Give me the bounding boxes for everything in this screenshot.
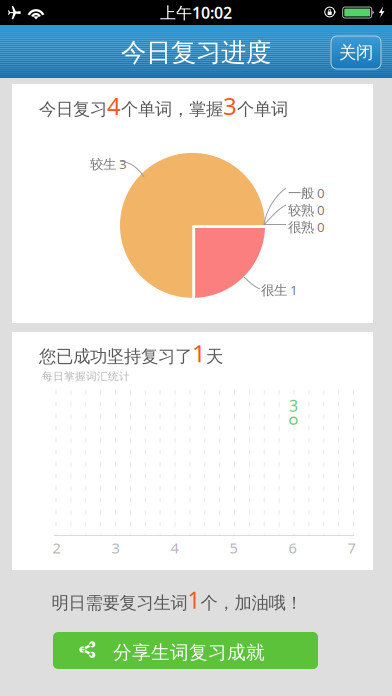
staticText: 4 (107, 90, 121, 122)
button[interactable]: 分享生词复习成就 (53, 632, 318, 669)
staticText: 上午10:02 (160, 2, 232, 23)
staticText: 今日复习 (39, 98, 107, 120)
staticText: 1 (192, 337, 206, 369)
staticText: 4 (171, 538, 179, 557)
staticText: 6 (289, 538, 297, 557)
staticText: 天 (206, 346, 223, 367)
staticText: 3 (289, 395, 298, 416)
staticText: 很生 1 (261, 281, 298, 299)
staticText: 3 (112, 538, 120, 557)
staticText: 较熟 0 (288, 201, 325, 219)
staticText: 今日复习进度 (121, 37, 271, 68)
staticText: 一般 0 (288, 184, 325, 202)
staticText: 5 (230, 538, 238, 557)
staticText: 2 (53, 538, 61, 557)
staticText: 您已成功坚持复习了 (39, 346, 192, 367)
staticText: 个单词 (237, 98, 288, 120)
staticText: 分享生词复习成就 (113, 641, 265, 664)
button[interactable]: 关闭 (331, 36, 381, 69)
staticText: 关闭 (339, 42, 373, 63)
staticText: 个，加油哦！ (200, 592, 302, 614)
staticText: 个单词，掌握 (121, 98, 223, 120)
staticText: 很熟 0 (288, 218, 325, 236)
staticText: 明日需要复习生词 (51, 592, 187, 614)
staticText: 1 (187, 585, 200, 615)
staticText: 3 (223, 90, 237, 122)
staticText: 较生 3 (90, 155, 127, 173)
staticText: 7 (348, 538, 356, 557)
staticText: 每日掌握词汇统计 (42, 370, 130, 383)
